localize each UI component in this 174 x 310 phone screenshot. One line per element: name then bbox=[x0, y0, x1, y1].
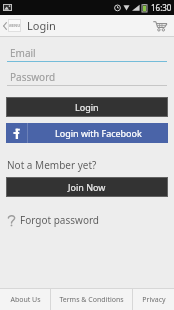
button[interactable]: Forgot password bbox=[6, 213, 100, 227]
button[interactable]: About Us bbox=[0, 289, 50, 310]
staticText: Not a Member yet? bbox=[7, 158, 97, 172]
staticText: Password bbox=[10, 70, 56, 84]
button[interactable]: Privacy bbox=[133, 289, 174, 310]
button[interactable]: Cart bbox=[146, 15, 174, 36]
staticText: Email bbox=[10, 46, 36, 60]
staticText: Forgot password bbox=[20, 213, 100, 227]
staticText: Login bbox=[75, 101, 99, 113]
staticText: 16:30 bbox=[151, 2, 172, 13]
button[interactable]: Email bbox=[7, 44, 167, 62]
button[interactable]: Password bbox=[7, 68, 167, 86]
staticText: Login bbox=[27, 18, 56, 33]
staticText: About Us bbox=[10, 295, 41, 305]
button[interactable]: Login bbox=[6, 97, 168, 117]
button[interactable]: Join Now bbox=[6, 177, 168, 197]
staticText: Join Now bbox=[68, 181, 106, 193]
staticText: MENU bbox=[8, 23, 21, 28]
staticText: Privacy bbox=[142, 295, 166, 305]
staticText: Login with Facebook bbox=[55, 127, 142, 139]
button[interactable]: Terms & Conditions bbox=[51, 289, 132, 310]
staticText: Terms & Conditions bbox=[59, 295, 124, 305]
button[interactable]: Navigate up bbox=[0, 15, 23, 36]
button[interactable]: Login with Facebook bbox=[6, 123, 168, 143]
